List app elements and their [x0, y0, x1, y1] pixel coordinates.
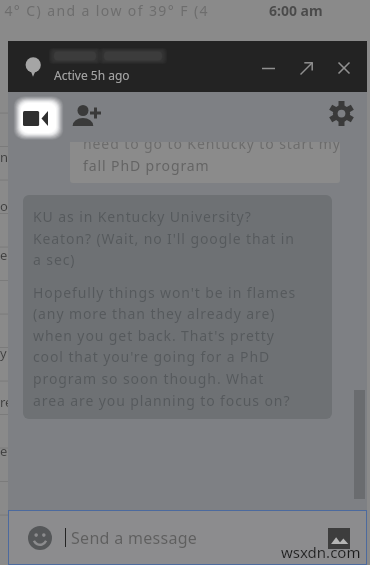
staticText: program so soon though. What — [33, 369, 265, 388]
staticText: wsxdn.com — [281, 542, 361, 562]
button[interactable]: Close — [325, 50, 363, 86]
staticText: cool that you're going for a PhD — [33, 347, 271, 366]
staticText: Keaton? (Wait, no I'll google that in — [33, 229, 295, 248]
staticText: Send a message — [71, 527, 198, 549]
staticText: a sec) — [33, 250, 76, 269]
button[interactable]: Minimize — [249, 50, 287, 86]
staticText: KU as in Kentucky University? — [33, 207, 252, 226]
button[interactable]: Pop out — [287, 50, 325, 86]
button[interactable]: Insert emoji — [25, 523, 55, 553]
staticText: area are you planning to focus on? — [33, 391, 291, 410]
button[interactable]: Settings — [324, 96, 358, 130]
button[interactable]: Add people — [70, 93, 112, 135]
staticText: Active 5h ago — [54, 67, 130, 83]
staticText: fall PhD program — [83, 156, 210, 175]
button[interactable]: Video call — [13, 96, 58, 141]
staticText: Hopefully things won't be in flames — [33, 283, 297, 302]
staticText: 6:00 am — [269, 1, 323, 20]
staticText: (any more than they already are) — [33, 304, 276, 323]
staticText: re — [0, 393, 13, 411]
staticText: ol — [0, 197, 12, 215]
staticText: when you get back. That's pretty — [33, 326, 275, 345]
staticText: 14° C) and a low of 39° F (4 — [0, 1, 209, 20]
button[interactable]: Insert photo — [324, 523, 354, 553]
staticText: y — [0, 344, 7, 362]
staticText: need to go to Kentucky to start my — [83, 142, 340, 153]
staticText: e — [0, 442, 8, 460]
staticText: e — [0, 246, 8, 264]
staticText: n — [0, 148, 9, 166]
